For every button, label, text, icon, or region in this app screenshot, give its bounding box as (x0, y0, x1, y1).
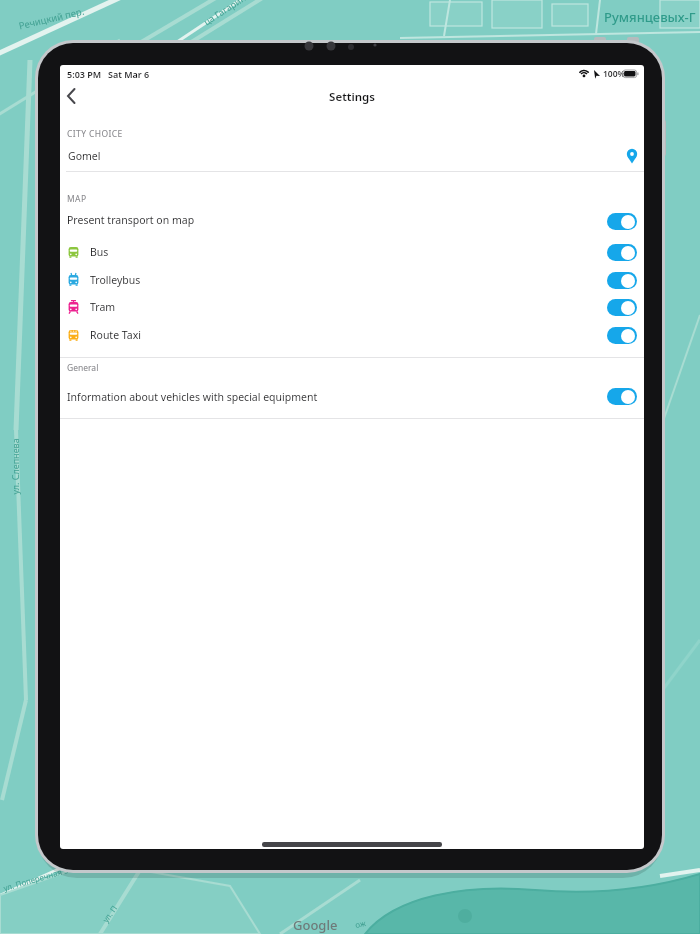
staticText: ож (354, 917, 367, 930)
button[interactable]: Route Taxi (60, 323, 644, 347)
staticText: Information about vehicles with special … (67, 390, 318, 404)
staticText: Речицкий пер. (17, 5, 86, 32)
button[interactable]: Present transport on map (60, 209, 644, 233)
staticText: ул. Слепнева (8, 437, 20, 494)
staticText: General (67, 362, 99, 374)
staticText: Sat Mar 6 (108, 68, 150, 80)
button[interactable] (607, 272, 637, 289)
staticText: Google (293, 916, 338, 934)
staticText: Route Taxi (90, 328, 141, 342)
button[interactable]: Gomel (60, 143, 644, 169)
staticText: Gomel (68, 149, 101, 163)
staticText: ул. Поперечная 3-я (2, 862, 77, 893)
button[interactable] (607, 213, 637, 230)
staticText: ул. П (99, 903, 119, 924)
staticText: Румянцевых-Г (604, 8, 696, 26)
staticText: Present transport on map (67, 213, 195, 227)
button[interactable]: Information about vehicles with special … (60, 385, 644, 409)
staticText: Tram (90, 300, 116, 314)
staticText: MAP (67, 193, 87, 205)
staticText: Settings (329, 89, 375, 105)
button[interactable] (607, 327, 637, 344)
staticText: Trolleybus (90, 273, 141, 287)
button[interactable]: Bus (60, 240, 644, 264)
staticText: CITY CHOICE (67, 128, 123, 140)
staticText: Bus (90, 245, 109, 259)
staticText: 5:03 PM (67, 68, 102, 80)
staticText: ца Гагарина (201, 0, 252, 27)
button[interactable] (607, 299, 637, 316)
button[interactable]: Tram (60, 295, 644, 319)
staticText: 100% (603, 68, 626, 80)
button[interactable]: Trolleybus (60, 268, 644, 292)
button[interactable] (607, 388, 637, 405)
button[interactable] (60, 83, 90, 109)
button[interactable] (607, 244, 637, 261)
